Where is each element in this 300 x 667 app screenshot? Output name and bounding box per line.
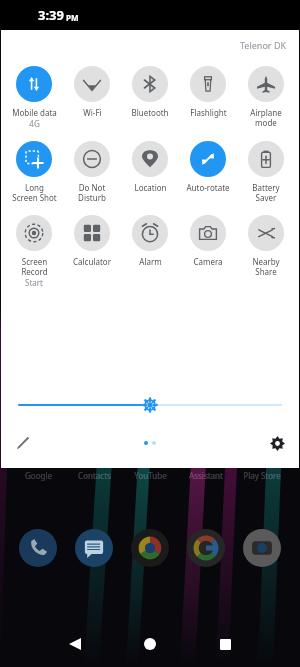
- button[interactable]: App: [75, 529, 113, 567]
- staticText: Airplane mode: [250, 107, 282, 128]
- staticText: Mobile data: [12, 107, 57, 118]
- staticText: Start: [25, 277, 43, 288]
- staticText: Battery Saver: [252, 182, 280, 203]
- staticText: Alarm: [139, 256, 162, 267]
- button[interactable]: Camera: [179, 215, 237, 267]
- button[interactable]: [1, 394, 299, 416]
- staticText: Flashlight: [190, 107, 227, 118]
- button[interactable]: Nearby Share: [237, 215, 295, 277]
- staticText: 4G: [29, 118, 40, 129]
- staticText: Play Store: [243, 470, 281, 481]
- staticText: Assistant: [189, 470, 223, 481]
- staticText: Wi-Fi: [83, 107, 102, 118]
- button[interactable]: Location: [121, 141, 179, 193]
- button[interactable]: Auto-rotate: [179, 141, 237, 193]
- button[interactable]: Long Screen Shot: [5, 141, 63, 203]
- staticText: Bluetooth: [131, 107, 169, 118]
- button[interactable]: Mobile data: [5, 66, 63, 129]
- button[interactable]: Recents: [208, 627, 242, 661]
- button[interactable]: Alarm: [121, 215, 179, 267]
- staticText: Location: [134, 182, 167, 193]
- button[interactable]: Home: [133, 627, 167, 661]
- staticText: Screen Record: [21, 256, 48, 277]
- button[interactable]: Battery Saver: [237, 141, 295, 203]
- staticText: YouTube: [134, 470, 167, 481]
- staticText: PM: [66, 12, 79, 23]
- staticText: Long Screen Shot: [12, 182, 57, 203]
- button[interactable]: App: [19, 529, 57, 567]
- staticText: Contacts: [78, 470, 111, 481]
- button[interactable]: Do Not Disturb: [63, 141, 121, 203]
- button[interactable]: Flashlight: [179, 66, 237, 118]
- button[interactable]: Bluetooth: [121, 66, 179, 118]
- staticText: 3:39: [38, 6, 64, 24]
- button[interactable]: Settings: [263, 430, 291, 456]
- staticText: Calculator: [73, 256, 111, 267]
- button[interactable]: App: [131, 529, 169, 567]
- button[interactable]: Screen Record: [5, 215, 63, 288]
- button[interactable]: App: [243, 529, 281, 567]
- button[interactable]: Edit tiles: [9, 430, 37, 456]
- button[interactable]: Airplane mode: [237, 66, 295, 128]
- button[interactable]: App: [187, 529, 225, 567]
- button[interactable]: Wi-Fi: [63, 66, 121, 118]
- staticText: Do Not Disturb: [78, 182, 106, 203]
- staticText: Nearby Share: [252, 256, 280, 277]
- button[interactable]: Back: [58, 627, 92, 661]
- button[interactable]: Calculator: [63, 215, 121, 267]
- staticText: Camera: [193, 256, 223, 267]
- staticText: Auto-rotate: [186, 182, 230, 193]
- staticText: Google: [25, 470, 52, 481]
- staticText: Telenor DK: [240, 39, 287, 51]
